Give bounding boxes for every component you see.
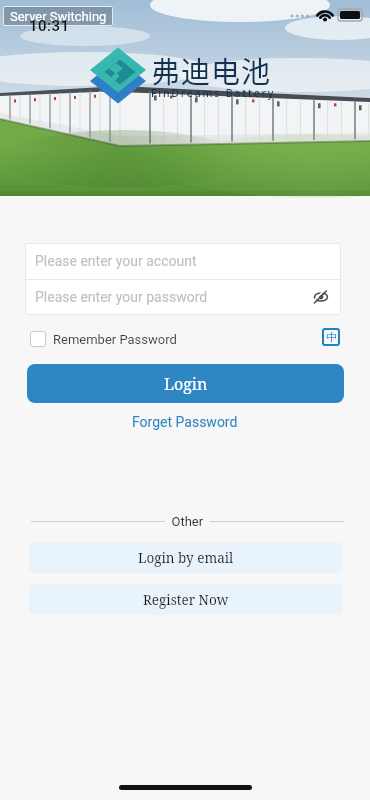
staticText: 10:31: [29, 17, 70, 35]
staticText: 弗迪电池: [151, 49, 272, 91]
staticText: Please enter your account: [35, 253, 197, 269]
button[interactable]: Remember Password: [30, 330, 177, 348]
staticText: Remember Password: [53, 332, 177, 347]
button[interactable]: 中: [322, 328, 340, 346]
button[interactable]: Login by email: [29, 542, 343, 573]
staticText: Please enter your password: [35, 289, 208, 305]
button[interactable]: Login: [27, 364, 344, 403]
button[interactable]: Please enter your account: [25, 243, 341, 279]
staticText: Login: [164, 373, 208, 395]
staticText: FinDreams Battery: [151, 86, 276, 100]
button[interactable]: Register Now: [29, 584, 343, 615]
button[interactable]: Forget Password: [132, 414, 238, 430]
button[interactable]: Please enter your password: [25, 279, 341, 315]
button[interactable]: Server Switching: [3, 6, 113, 26]
staticText: Login by email: [138, 549, 234, 567]
staticText: Other: [165, 514, 210, 529]
staticText: Register Now: [143, 591, 229, 609]
staticText: Server Switching: [10, 9, 107, 24]
staticText: 中: [326, 330, 337, 344]
